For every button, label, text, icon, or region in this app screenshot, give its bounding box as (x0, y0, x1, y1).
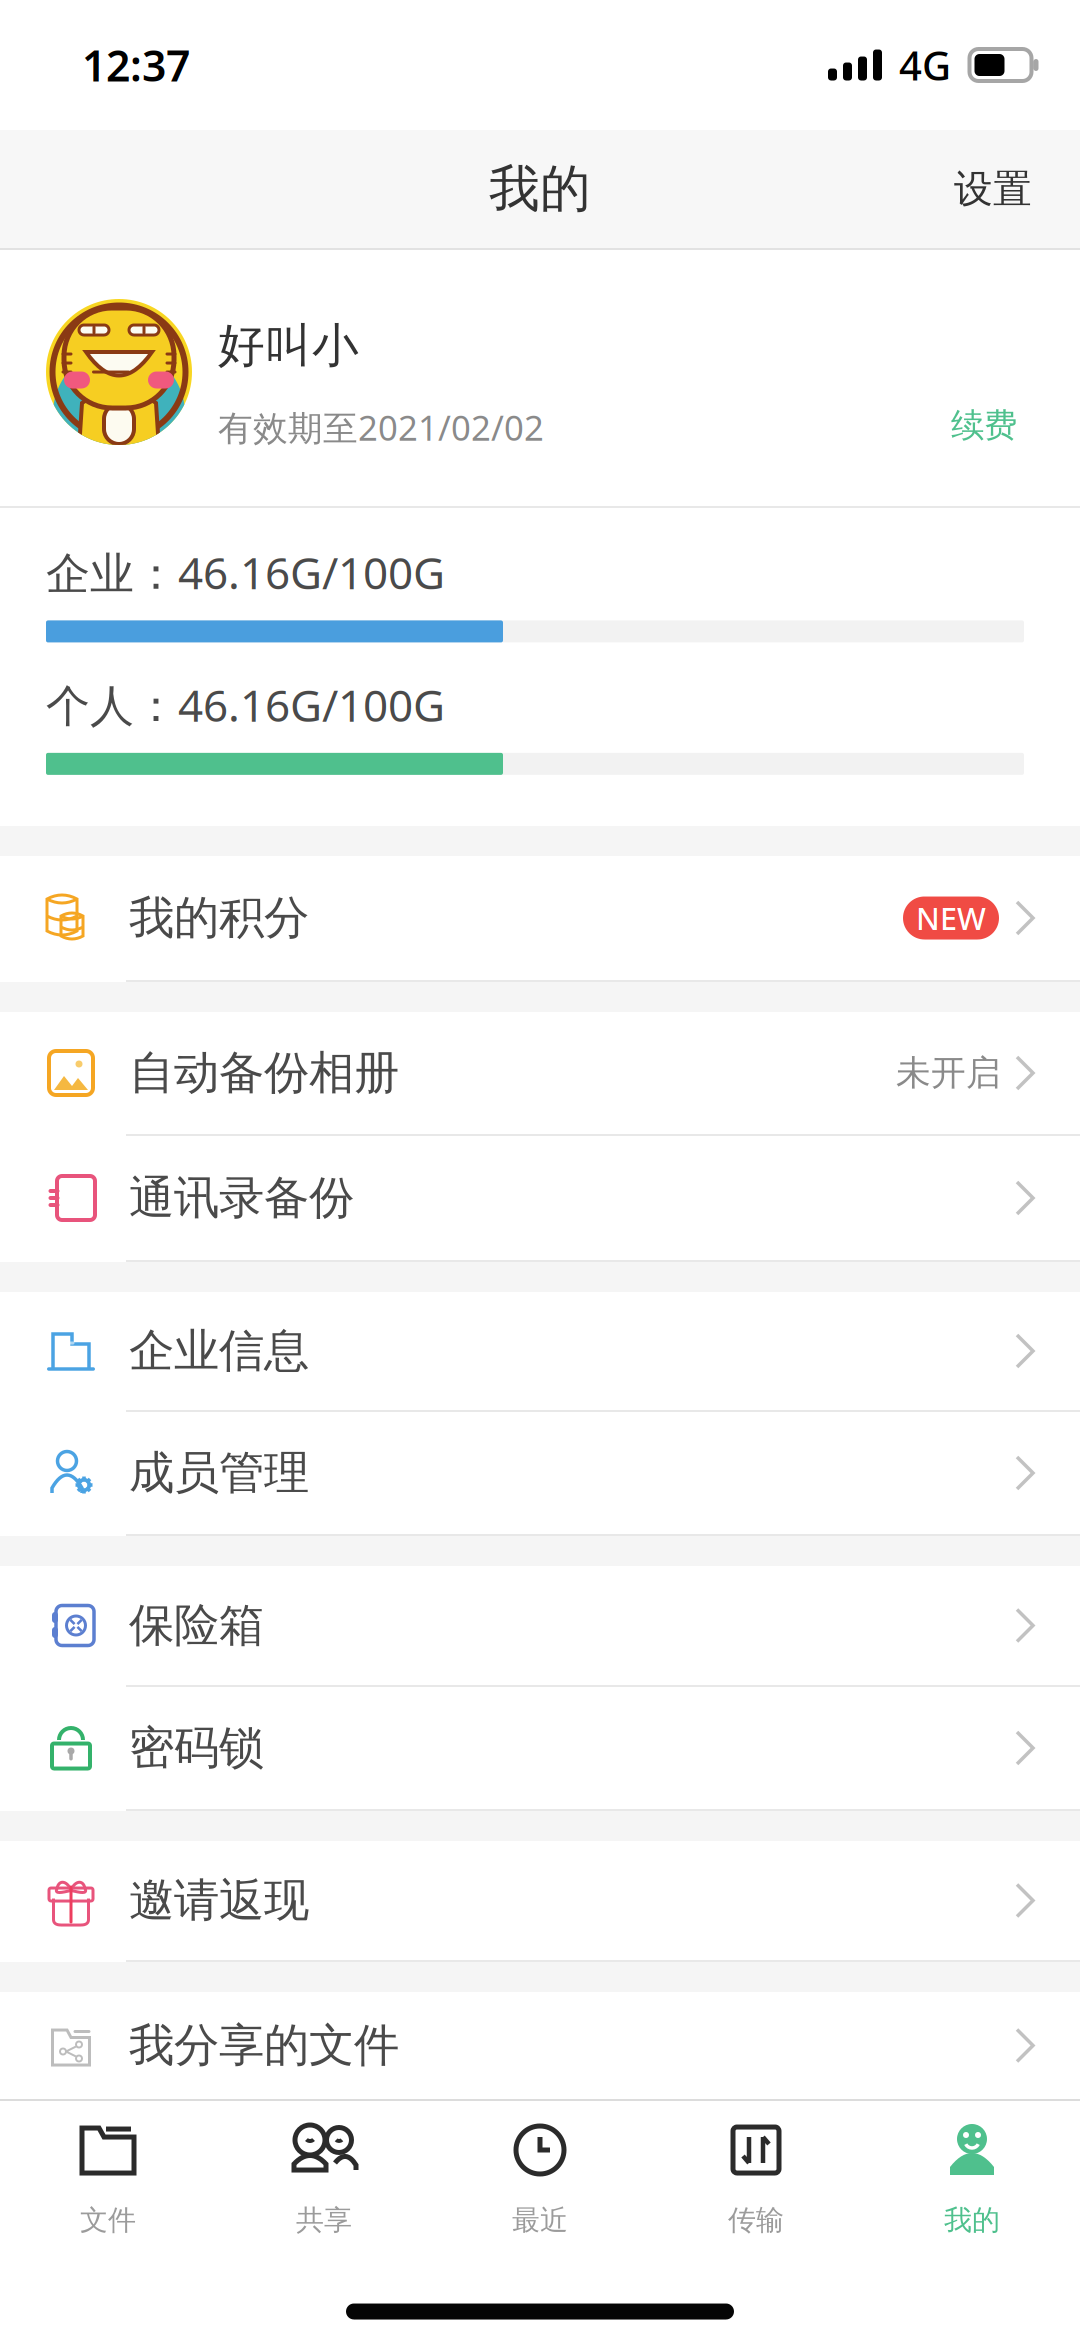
staticText: NEW (916, 898, 986, 938)
staticText: 我的 (489, 158, 591, 220)
staticText: 我的 (944, 2203, 1000, 2237)
button[interactable]: 我的积分 (0, 856, 1080, 980)
staticText: 最近 (512, 2203, 568, 2237)
button[interactable]: 我的 (864, 2101, 1080, 2259)
staticText: 成员管理 (129, 1445, 309, 1501)
staticText: 未开启 (896, 1052, 1001, 1094)
button[interactable]: 好叫小 (0, 250, 1080, 506)
staticText: 自动备份相册 (129, 1045, 399, 1101)
staticText: 有效期至2021/02/02 (218, 404, 544, 450)
staticText: 传输 (728, 2203, 784, 2237)
button[interactable]: 邀请返现 (0, 1841, 1080, 1960)
staticText: 共享 (296, 2203, 352, 2237)
staticText: 4G (899, 38, 951, 91)
staticText: 邀请返现 (129, 1873, 309, 1928)
button[interactable]: 传输 (648, 2101, 864, 2259)
staticText: 通讯录备份 (129, 1170, 354, 1226)
button[interactable]: 企业信息 (0, 1292, 1080, 1410)
button[interactable]: 通讯录备份 (0, 1136, 1080, 1260)
staticText: 企业：46.16G/100G (46, 543, 445, 601)
button[interactable]: 成员管理 (0, 1412, 1080, 1534)
staticText: 设置 (954, 165, 1032, 213)
button[interactable]: 自动备份相册 (0, 1012, 1080, 1134)
button[interactable]: 密码锁 (0, 1687, 1080, 1809)
staticText: 密码锁 (129, 1720, 264, 1776)
staticText: 12:37 (82, 37, 190, 93)
staticText: 好叫小 (218, 317, 359, 374)
button[interactable]: 保险箱 (0, 1566, 1080, 1685)
staticText: 个人：46.16G/100G (46, 675, 445, 734)
button[interactable]: 设置 (934, 151, 1052, 227)
staticText: 我分享的文件 (129, 2018, 399, 2073)
button[interactable]: 我分享的文件 (0, 1992, 1080, 2099)
button[interactable]: 最近 (432, 2101, 648, 2259)
staticText: 我的积分 (129, 890, 309, 946)
staticText: 文件 (80, 2203, 136, 2237)
button[interactable]: 共享 (216, 2101, 432, 2259)
staticText: 企业信息 (129, 1323, 309, 1379)
staticText: 保险箱 (129, 1598, 264, 1653)
staticText: 续费 (951, 405, 1017, 446)
button[interactable]: 文件 (0, 2101, 216, 2259)
